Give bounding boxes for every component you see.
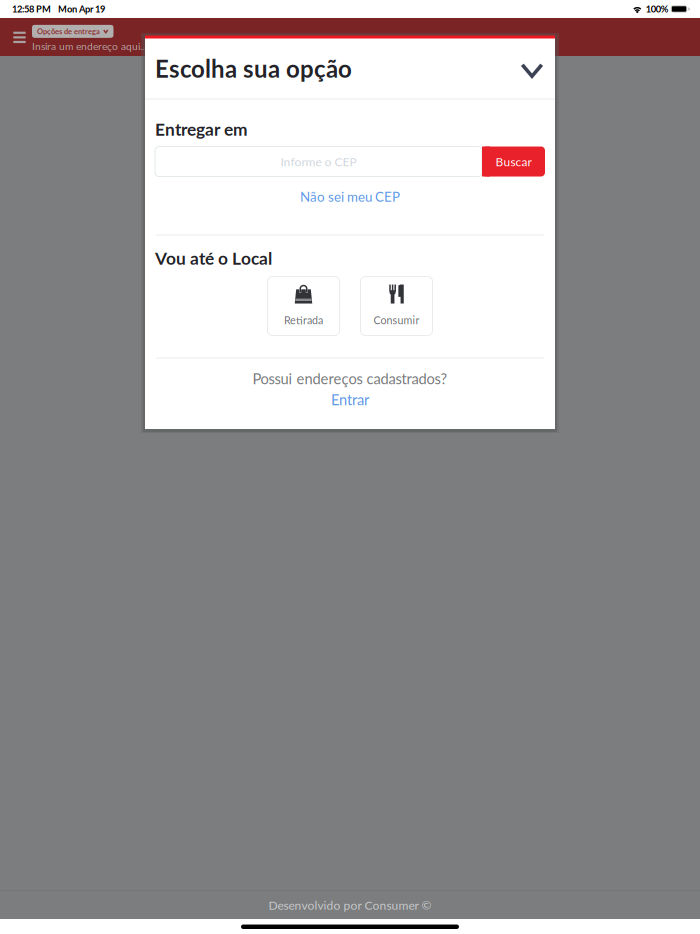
button[interactable]: Consumir (360, 276, 432, 335)
staticText: Desenvolvido por Consumer © (268, 898, 431, 912)
button[interactable]: Não sei meu CEP (294, 187, 406, 205)
staticText: Consumir (373, 314, 419, 326)
staticText: Mon Apr 19 (58, 3, 105, 15)
button[interactable]: Opções de entrega (32, 25, 113, 38)
staticText: Entrar (331, 391, 369, 408)
staticText: Possui endereços cadastrados? (252, 370, 447, 387)
staticText: Opções de entrega (37, 27, 100, 36)
staticText: Entregar em (155, 119, 248, 139)
button[interactable]: Buscar (482, 146, 545, 176)
button[interactable]: Retirada (267, 276, 339, 335)
button[interactable]: Fechar (514, 50, 550, 86)
button[interactable]: Menu (7, 25, 32, 50)
staticText: Informe o CEP (280, 154, 356, 169)
staticText: Escolha sua opção (155, 54, 352, 83)
staticText: Não sei meu CEP (300, 188, 400, 204)
staticText: Insira um endereço aqui... (32, 40, 146, 52)
button[interactable]: Entrar (323, 391, 377, 407)
staticText: 100% (646, 3, 669, 15)
staticText: 12:58 PM (12, 3, 51, 15)
staticText: Vou até o Local (155, 248, 272, 268)
staticText: Retirada (284, 314, 323, 326)
staticText: Buscar (495, 154, 531, 169)
